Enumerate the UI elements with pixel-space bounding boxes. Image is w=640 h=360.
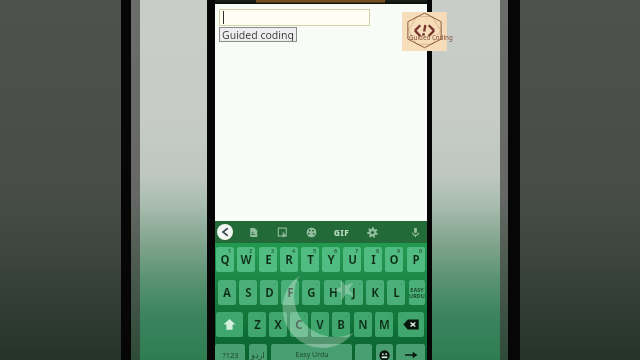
button[interactable]: Settings	[364, 224, 380, 240]
button[interactable]: اردو	[249, 344, 267, 360]
staticText: Q	[220, 252, 230, 268]
staticText: C	[295, 317, 303, 333]
staticText: 1	[228, 247, 232, 254]
button[interactable]: R	[280, 247, 298, 272]
button[interactable]: D	[260, 280, 278, 305]
staticText: Z	[254, 317, 261, 333]
button[interactable]: X	[269, 312, 287, 337]
button[interactable]: B	[332, 312, 350, 337]
staticText: ·	[325, 312, 327, 319]
button[interactable]: I	[364, 247, 382, 272]
button[interactable]: W	[237, 247, 255, 272]
staticText: 7	[355, 247, 359, 254]
button[interactable]: Voice input	[407, 224, 423, 240]
button[interactable]: P	[407, 247, 425, 272]
staticText: ·	[262, 312, 264, 319]
button[interactable]: S	[239, 280, 257, 305]
button[interactable]: Select all	[274, 224, 290, 240]
button[interactable]: ?123	[215, 344, 245, 360]
staticText: A	[223, 285, 231, 301]
staticText: ·	[346, 312, 348, 319]
staticText: ·	[368, 312, 370, 319]
button[interactable]: Clipboard	[245, 224, 261, 240]
staticText: ·	[295, 280, 297, 287]
staticText: EASY URDU	[409, 286, 425, 299]
button[interactable]: H	[324, 280, 342, 305]
staticText: 6	[334, 247, 338, 254]
staticText: L	[393, 285, 400, 301]
button[interactable]	[355, 344, 372, 360]
button[interactable]: E	[259, 247, 277, 272]
staticText: ·	[401, 280, 403, 287]
staticText: ·	[304, 312, 306, 319]
button[interactable]: Easy Urdu	[271, 344, 352, 360]
staticText: ·	[338, 280, 340, 287]
staticText: 9	[397, 247, 401, 254]
staticText: X	[274, 317, 282, 333]
button[interactable]: U	[343, 247, 361, 272]
staticText: T	[307, 252, 314, 268]
staticText: F	[287, 285, 294, 301]
staticText: 0	[419, 247, 423, 254]
button[interactable]: Text input	[220, 10, 369, 25]
staticText: ·	[283, 312, 285, 319]
staticText: ·	[389, 312, 391, 319]
staticText: ·	[380, 280, 382, 287]
staticText: 4	[292, 247, 296, 254]
button[interactable]: L	[387, 280, 405, 305]
button[interactable]: T	[301, 247, 319, 272]
button[interactable]: V	[311, 312, 329, 337]
staticText: ?123	[222, 350, 239, 360]
staticText: ·	[359, 280, 361, 287]
staticText: Guided coding	[222, 28, 294, 41]
staticText: H	[329, 285, 338, 301]
staticText: S	[245, 285, 252, 301]
staticText: E	[265, 252, 272, 268]
staticText: 5	[313, 247, 317, 254]
staticText: ·	[232, 280, 234, 287]
button[interactable]: A	[218, 280, 236, 305]
staticText: B	[337, 317, 345, 333]
staticText: V	[316, 317, 324, 333]
button[interactable]: Z	[248, 312, 266, 337]
button[interactable]	[396, 344, 425, 360]
staticText: U	[348, 252, 357, 268]
staticText: 2	[249, 247, 253, 254]
staticText: J	[352, 285, 356, 301]
button[interactable]: N	[354, 312, 372, 337]
staticText: Y	[327, 252, 335, 268]
staticText: 3	[271, 247, 275, 254]
button[interactable]: Y	[322, 247, 340, 272]
button[interactable]: EASY URDU	[409, 280, 425, 305]
button[interactable]: G	[302, 280, 320, 305]
staticText: اردو	[251, 351, 265, 360]
button[interactable]: J	[345, 280, 363, 305]
staticText: ·	[274, 280, 276, 287]
staticText: I	[371, 252, 376, 268]
button[interactable]: Back	[217, 224, 233, 240]
staticText: ·	[316, 280, 318, 287]
staticText: K	[371, 285, 379, 301]
staticText: G	[307, 285, 316, 301]
staticText: W	[240, 252, 252, 268]
button[interactable]	[398, 312, 424, 337]
button[interactable]: GIF	[330, 225, 354, 239]
button[interactable]: Theme	[303, 224, 319, 240]
staticText: Guided Coding	[409, 33, 453, 41]
button[interactable]	[216, 312, 243, 337]
staticText: Easy Urdu	[295, 350, 329, 360]
staticText: R	[285, 252, 293, 268]
staticText: M	[379, 317, 390, 333]
button[interactable]: O	[385, 247, 403, 272]
staticText: P	[412, 252, 420, 268]
staticText: N	[358, 317, 368, 333]
button[interactable]: F	[281, 280, 299, 305]
button[interactable]: C	[290, 312, 308, 337]
button[interactable]	[376, 344, 393, 360]
button[interactable]: Q	[216, 247, 234, 272]
button[interactable]: Guided coding	[220, 28, 296, 41]
button[interactable]: K	[366, 280, 384, 305]
button[interactable]: M	[375, 312, 393, 337]
staticText: O	[389, 252, 399, 268]
staticText: D	[265, 285, 274, 301]
